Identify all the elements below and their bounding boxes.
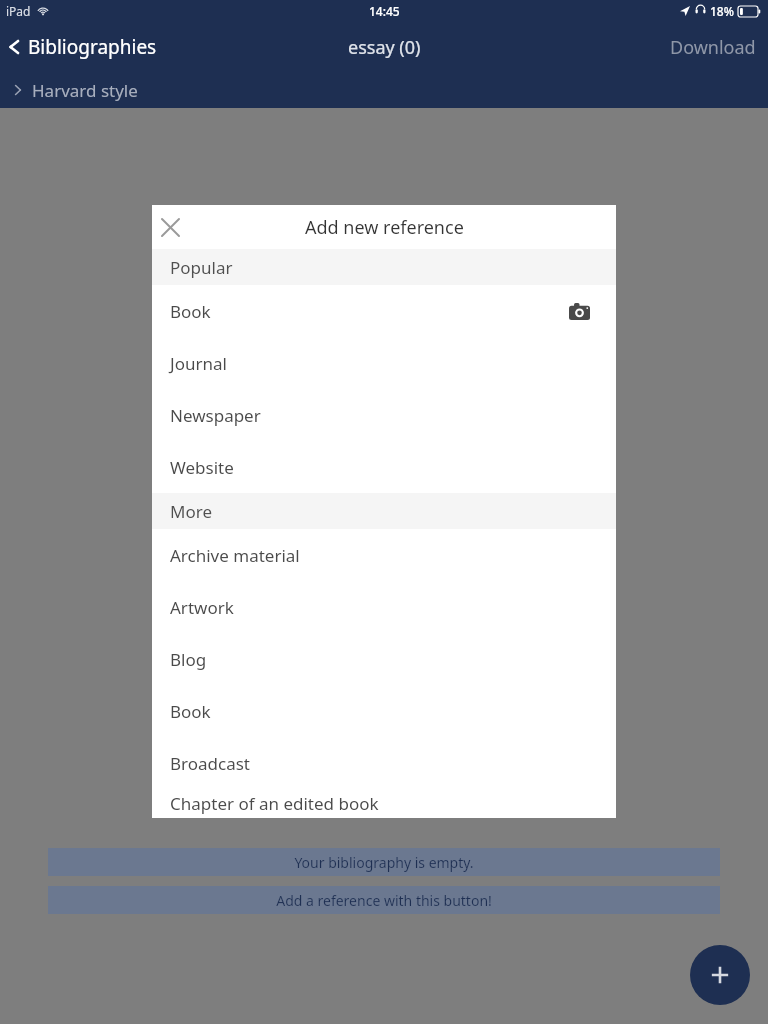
staticText: Harvard style [32, 79, 138, 102]
staticText: 14:45 [369, 3, 400, 19]
button[interactable]: Book [152, 685, 616, 737]
button[interactable]: Download [658, 27, 768, 68]
button[interactable]: Newspaper [152, 389, 616, 441]
button[interactable]: Harvard style [0, 72, 768, 108]
staticText: Newspaper [170, 404, 261, 427]
button[interactable]: Archive material [152, 529, 616, 581]
staticText: Popular [170, 256, 233, 279]
button[interactable]: Website [152, 441, 616, 493]
staticText: Artwork [170, 596, 234, 619]
staticText: Broadcast [170, 752, 250, 775]
staticText: iPad [6, 3, 31, 19]
staticText: Add new reference [305, 215, 464, 240]
button[interactable]: Bibliographies [0, 28, 169, 66]
button[interactable]: Close [152, 211, 189, 244]
staticText: essay (0) [348, 35, 421, 60]
button[interactable]: Add reference [690, 945, 750, 1005]
staticText: Journal [170, 352, 227, 375]
button[interactable]: Book [152, 285, 616, 337]
staticText: Book [170, 700, 211, 723]
staticText: Chapter of an edited book [170, 792, 379, 815]
button[interactable]: Blog [152, 633, 616, 685]
button[interactable]: Scan book barcode [565, 299, 594, 324]
button[interactable]: Broadcast [152, 737, 616, 789]
staticText: Book [170, 300, 211, 323]
staticText: Add a reference with this button! [276, 891, 492, 910]
staticText: More [170, 500, 212, 523]
button[interactable]: Chapter of an edited book [152, 789, 616, 818]
staticText: Website [170, 456, 234, 479]
staticText: 18% [710, 3, 734, 19]
button[interactable]: Artwork [152, 581, 616, 633]
staticText: Download [670, 35, 756, 60]
staticText: Blog [170, 648, 207, 671]
button[interactable]: Journal [152, 337, 616, 389]
staticText: Bibliographies [28, 34, 157, 60]
staticText: Archive material [170, 544, 300, 567]
staticText: Your bibliography is empty. [294, 853, 474, 872]
